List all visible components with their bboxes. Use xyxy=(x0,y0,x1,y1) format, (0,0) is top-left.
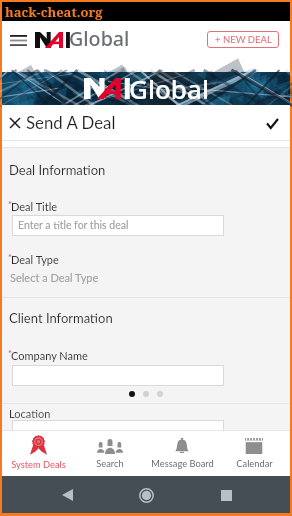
staticText: Calendar xyxy=(236,458,273,469)
staticText: Company Name xyxy=(11,349,88,362)
staticText: Deal Title xyxy=(11,200,58,213)
button[interactable]: Close xyxy=(5,113,25,133)
staticText: + NEW DEAL xyxy=(215,34,272,45)
button[interactable]: Search xyxy=(74,430,146,476)
button[interactable]: Recents xyxy=(211,480,241,510)
button[interactable]: Message Board xyxy=(146,430,218,476)
button[interactable]: + NEW DEAL xyxy=(207,31,279,48)
staticText: * xyxy=(8,252,12,263)
button[interactable]: System Deals xyxy=(2,430,74,476)
staticText: Global xyxy=(129,71,209,104)
button[interactable]: Enter a title for this deal xyxy=(12,215,224,236)
staticText: Send A Deal xyxy=(26,112,116,132)
button[interactable]: Calendar xyxy=(218,430,290,476)
staticText: Global xyxy=(69,25,130,52)
staticText: Deal Type xyxy=(11,253,59,266)
staticText: Enter a title for this deal xyxy=(18,219,129,232)
staticText: Select a Deal Type xyxy=(10,271,99,284)
staticText: Deal Information xyxy=(9,162,106,178)
staticText: Client Information xyxy=(9,310,113,326)
staticText: Search xyxy=(96,458,124,469)
staticText: hack-cheat.org xyxy=(5,3,103,21)
button[interactable]: Submit xyxy=(262,113,282,133)
button[interactable]: Home xyxy=(131,480,161,510)
button[interactable]: Back xyxy=(52,480,82,510)
button[interactable] xyxy=(12,420,224,441)
button[interactable] xyxy=(12,365,224,386)
staticText: System Deals xyxy=(11,459,66,470)
staticText: Message Board xyxy=(151,458,214,469)
staticText: * xyxy=(8,199,12,210)
staticText: * xyxy=(8,348,12,359)
button[interactable]: Menu xyxy=(7,29,29,51)
staticText: Location xyxy=(9,407,51,420)
